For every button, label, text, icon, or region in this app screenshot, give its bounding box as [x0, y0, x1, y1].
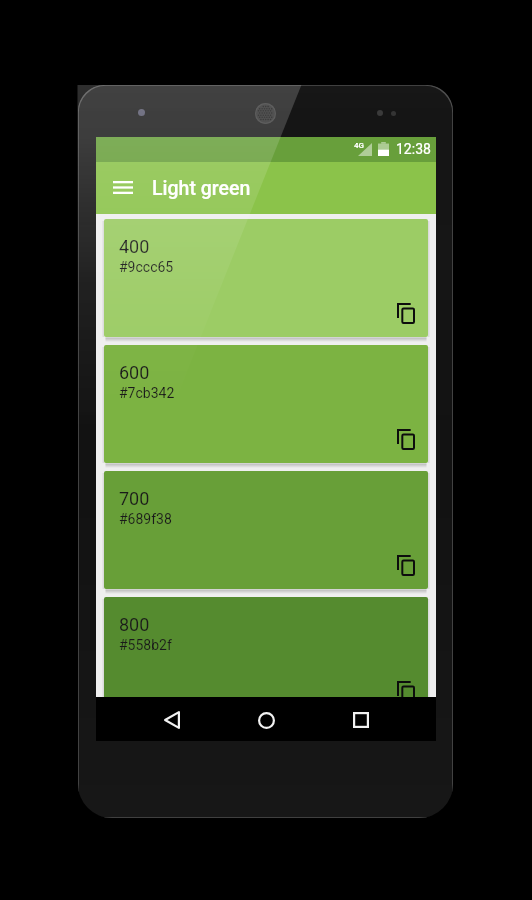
button[interactable]: Home	[243, 698, 289, 742]
button[interactable]: Back	[149, 698, 195, 742]
staticText: #7cb342	[119, 385, 175, 401]
button[interactable]: Copy colour value	[389, 422, 423, 456]
button[interactable]: 700	[104, 471, 428, 589]
staticText: #558b2f	[119, 637, 172, 653]
staticText: #9ccc65	[119, 259, 174, 275]
staticText: 400	[119, 236, 150, 257]
staticText: 4G	[354, 141, 364, 150]
staticText: 12:38	[396, 141, 431, 157]
button[interactable]: 400	[104, 219, 428, 337]
button[interactable]: Copy colour value	[389, 296, 423, 330]
button[interactable]: Recent apps	[338, 698, 384, 742]
staticText: 800	[119, 614, 150, 635]
button[interactable]: Copy colour value	[389, 674, 423, 708]
button[interactable]: 800	[104, 597, 428, 715]
staticText: #689f38	[119, 511, 172, 527]
button[interactable]: 600	[104, 345, 428, 463]
button[interactable]: Copy colour value	[389, 548, 423, 582]
staticText: 700	[119, 488, 150, 509]
staticText: 600	[119, 362, 150, 383]
staticText: Light green	[152, 177, 251, 200]
button[interactable]: Open navigation drawer	[102, 169, 144, 205]
